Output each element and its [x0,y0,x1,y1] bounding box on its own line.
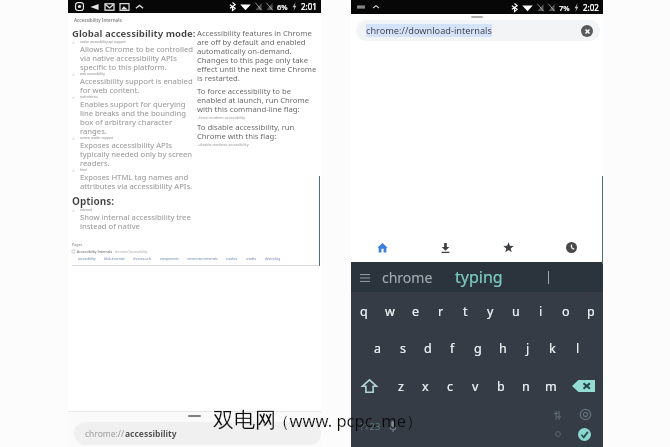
staticText: text metrics [80,95,98,99]
staticText: device-log [265,257,281,261]
staticText: q [360,303,368,320]
button[interactable]: b [488,367,513,405]
staticText: ✓ [72,96,76,100]
staticText: Options: [72,194,115,208]
staticText: accessibility [78,257,96,261]
button[interactable]: s [390,330,415,367]
button[interactable]: z [388,367,413,405]
staticText: ✓ [72,169,76,173]
button[interactable]: w [377,293,403,330]
staticText: html [80,168,87,172]
staticText: f [450,340,455,357]
button[interactable]: c [438,367,463,405]
button[interactable]: u [503,293,528,330]
staticText: w [385,303,395,320]
staticText: 6% [277,2,288,12]
staticText: chrome://accessibility [115,250,148,254]
staticText: chrome://download-internals [366,24,492,37]
staticText: e [412,303,420,320]
button[interactable]: Menu [358,271,371,284]
staticText: To disable accessibility, run Chrome wit… [197,122,320,141]
button[interactable]: Downloads [414,233,477,262]
staticText: u [512,303,520,320]
staticText: v [472,378,479,395]
button[interactable]: y [478,293,503,330]
button[interactable]: e [403,293,428,330]
staticText: chrome:// [85,428,125,440]
button[interactable]: x [413,367,438,405]
button[interactable]: Voice input [384,411,402,441]
staticText: m [545,378,557,395]
button[interactable]: chrome://download-internals [356,20,600,41]
button[interactable]: chrome [382,268,433,287]
staticText: Exposes HTML tag names and attributes vi… [80,172,197,191]
button[interactable]: Enter [577,427,592,442]
staticText: 双电网 [213,407,276,433]
button[interactable]: Shift [351,367,388,405]
button[interactable]: n [513,367,538,405]
staticText: web accessibility [80,72,105,76]
staticText: z [398,378,404,395]
staticText: native accessibility api support [80,40,126,44]
staticText: accessibility [125,428,177,440]
staticText: chrome [382,268,433,287]
button[interactable]: q [351,293,377,330]
button[interactable]: l [565,330,590,367]
button[interactable]: Emoji [578,407,592,421]
staticText: h [499,340,507,357]
button[interactable]: k [540,330,565,367]
button[interactable]: m [538,367,563,405]
staticText: c [447,378,454,395]
button[interactable]: History [540,233,603,262]
button[interactable]: h [490,330,515,367]
staticText: --disable-renderer-accessibility [197,142,249,147]
button[interactable]: Symbols [359,411,381,441]
staticText: Accessibility features in Chrome are off… [197,28,320,83]
staticText: Enables support for querying line breaks… [80,99,197,136]
staticText: j [526,340,530,357]
button[interactable]: Period [551,427,565,441]
button[interactable]: a [365,330,390,367]
staticText: crashes [226,257,238,261]
staticText: credits [246,257,257,261]
button[interactable]: chrome:// [74,422,321,445]
button[interactable]: p [578,293,603,330]
staticText: ✓ [72,209,76,213]
staticText: screen reader support [80,136,114,140]
staticText: 7% [559,3,570,13]
staticText: Allows Chrome to be controlled via nativ… [80,44,197,72]
button[interactable]: Home [351,233,414,262]
button[interactable]: g [465,330,490,367]
button[interactable]: Clear [581,25,593,37]
staticText: typing [455,266,503,288]
button[interactable]: f [440,330,465,367]
staticText: x [422,378,429,395]
staticText: Accessibility Internals [74,17,122,23]
button[interactable]: i [528,293,553,330]
staticText: internal [80,208,92,212]
staticText: ?123 [360,420,381,433]
staticText: k [549,340,556,357]
staticText: Pages [72,242,83,247]
staticText: a [374,340,382,357]
button[interactable]: o [553,293,578,330]
staticText: n [522,378,530,395]
staticText: To force accessibility to be enabled at … [197,86,320,114]
staticText: conversion-internals [187,257,218,261]
button[interactable]: Bookmarks [477,233,540,262]
button[interactable]: v [463,367,488,405]
button[interactable]: Backspace [563,367,603,405]
staticText: ✓ [72,41,76,45]
staticText: g [474,340,482,357]
staticText: i [539,303,543,320]
button[interactable]: j [515,330,540,367]
button[interactable]: r [428,293,453,330]
button[interactable]: t [453,293,478,330]
button[interactable]: d [415,330,440,367]
button[interactable]: typing [455,266,503,288]
button[interactable]: Settings shortcut [549,407,565,423]
staticText: t [463,303,468,320]
staticText: Accessibility support is enabled for web… [80,76,197,95]
staticText: Exposes accessibility APIs typically nee… [80,140,197,168]
